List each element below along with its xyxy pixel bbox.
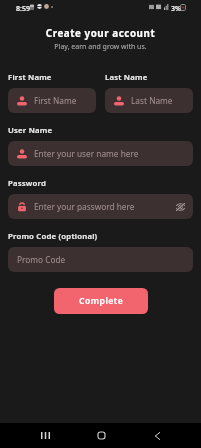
staticText: Last Name bbox=[131, 95, 185, 106]
staticText: Create your account bbox=[0, 27, 201, 40]
button[interactable]: Last Name bbox=[105, 88, 193, 113]
staticText: First Name bbox=[8, 72, 52, 83]
staticText: Password bbox=[8, 178, 47, 189]
button[interactable]: Promo Code bbox=[8, 247, 193, 272]
button[interactable]: Complete bbox=[54, 288, 148, 314]
staticText: Enter your user name here bbox=[34, 148, 185, 159]
button[interactable]: First Name bbox=[8, 88, 96, 113]
button[interactable]: Recent apps bbox=[30, 423, 60, 448]
staticText: Last Name bbox=[105, 72, 148, 83]
staticText: 3% bbox=[171, 4, 181, 14]
staticText: First Name bbox=[34, 95, 88, 106]
staticText: 8:59 bbox=[16, 4, 30, 14]
staticText: User Name bbox=[8, 125, 53, 136]
staticText: Complete bbox=[79, 295, 124, 307]
staticText: Promo Code (optional) bbox=[8, 231, 98, 242]
other: Show password bbox=[176, 203, 185, 211]
staticText: Play, earn and grow with us. bbox=[0, 42, 201, 52]
staticText: Promo Code bbox=[17, 254, 185, 265]
button[interactable]: Home bbox=[86, 423, 116, 448]
button[interactable]: Enter your user name here bbox=[8, 141, 193, 166]
staticText: Enter your password here bbox=[34, 201, 176, 212]
button[interactable]: Enter your password here bbox=[8, 194, 193, 219]
button[interactable]: Back bbox=[142, 423, 172, 448]
